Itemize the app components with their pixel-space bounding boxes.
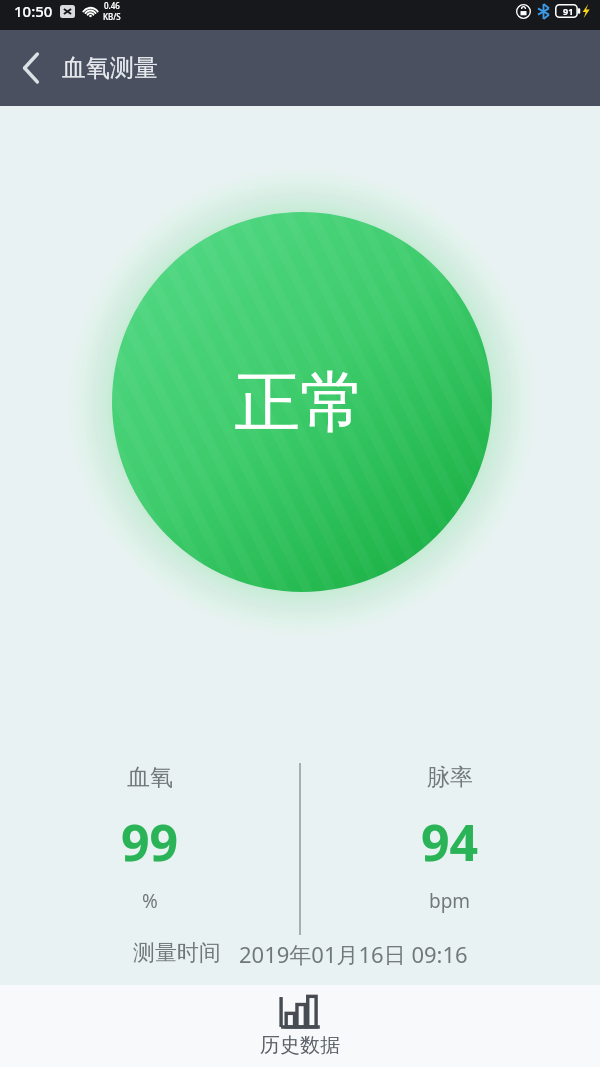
staticText: 2019年01月16日 09:16 — [239, 939, 468, 969]
staticText: bpm — [429, 888, 471, 914]
staticText: 94 — [421, 808, 479, 876]
staticText: 正常 — [234, 361, 366, 444]
staticText: 测量时间 — [133, 939, 221, 967]
button[interactable]: 历史数据 — [0, 985, 600, 1067]
staticText: 历史数据 — [260, 1033, 340, 1058]
staticText: 10:50 — [14, 1, 53, 21]
button[interactable]: Back — [0, 30, 62, 106]
staticText: 91 — [563, 5, 574, 17]
staticText: 0.46 — [104, 0, 120, 11]
staticText: KB/S — [103, 11, 121, 22]
staticText: 血氧 — [127, 763, 173, 792]
staticText: 99 — [121, 808, 179, 876]
staticText: 血氧测量 — [62, 53, 158, 83]
staticText: % — [142, 888, 158, 914]
staticText: 脉率 — [427, 763, 473, 792]
